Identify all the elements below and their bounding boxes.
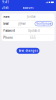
staticText: 9:41 — [2, 0, 9, 4]
staticText: Email — [3, 22, 9, 25]
staticText: Password — [3, 29, 15, 32]
staticText: Account — [22, 6, 33, 9]
button[interactable]: Back — [0, 5, 10, 11]
staticText: 555 — [30, 36, 36, 39]
staticText: ‹ — [2, 5, 3, 10]
staticText: Updated — [28, 29, 40, 32]
staticText: j@mail — [18, 22, 26, 25]
staticText: Verify now — [36, 22, 51, 25]
button[interactable]: Save changes — [16, 48, 39, 54]
staticText: Back — [3, 6, 8, 9]
button[interactable]: Password — [1, 27, 54, 34]
staticText: Name — [3, 15, 10, 19]
staticText: Save changes — [18, 49, 37, 52]
staticText: Phone — [3, 36, 13, 39]
staticText: Jordan — [27, 15, 36, 19]
button[interactable]: Verify now — [35, 22, 53, 26]
button[interactable]: Name — [1, 13, 54, 20]
button[interactable]: Phone — [1, 34, 54, 41]
